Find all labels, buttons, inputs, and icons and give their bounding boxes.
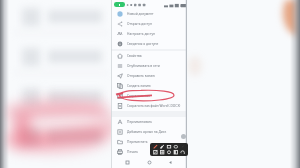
staticText: Сведения о доступе	[127, 42, 159, 46]
staticText: Добавить ярлык на Диск	[127, 130, 167, 134]
button[interactable]: Добавить ярлык на Диск	[111, 127, 187, 137]
staticText: Создать копию	[127, 84, 151, 88]
button[interactable]: Сохранить как файл Word (.DOCX)	[111, 101, 187, 111]
button[interactable]: Опубликовать в сети	[111, 61, 187, 71]
staticText: Переместить	[127, 140, 148, 144]
staticText: Открыть доступ	[127, 22, 152, 26]
button[interactable]: Markup tools	[150, 143, 188, 156]
button[interactable]: Сведения о доступе	[111, 39, 187, 49]
button[interactable]: Home	[144, 157, 155, 168]
button[interactable]: Сохранить как	[111, 91, 187, 101]
staticText: Переименовать	[127, 120, 153, 124]
staticText: Отправить копию	[127, 74, 155, 78]
staticText: Свойства	[127, 54, 142, 58]
button[interactable]: Отправить копию	[111, 71, 187, 81]
staticText: Опубликовать в сети	[127, 64, 160, 68]
staticText: Новый документ	[127, 12, 154, 16]
button[interactable]: Открыть доступ	[111, 19, 187, 29]
button[interactable]: Свойства	[111, 51, 187, 61]
staticText: Настроить доступ	[127, 32, 156, 36]
button[interactable]: Close markup toolbar	[181, 134, 186, 139]
button[interactable]: Настроить доступ	[111, 29, 187, 39]
button[interactable]: Переместить	[111, 137, 187, 147]
button[interactable]: Переименовать	[111, 117, 187, 127]
staticText: Сохранить как	[127, 94, 150, 98]
button[interactable]: Новый документ	[111, 9, 187, 19]
button[interactable]: Recent apps	[122, 157, 133, 168]
button[interactable]: Создать копию	[111, 81, 187, 91]
button[interactable]: Back	[165, 157, 176, 168]
staticText: Печать	[127, 150, 139, 154]
button[interactable]: Печать	[111, 147, 187, 157]
staticText: Сохранить как файл Word (.DOCX)	[127, 104, 181, 108]
